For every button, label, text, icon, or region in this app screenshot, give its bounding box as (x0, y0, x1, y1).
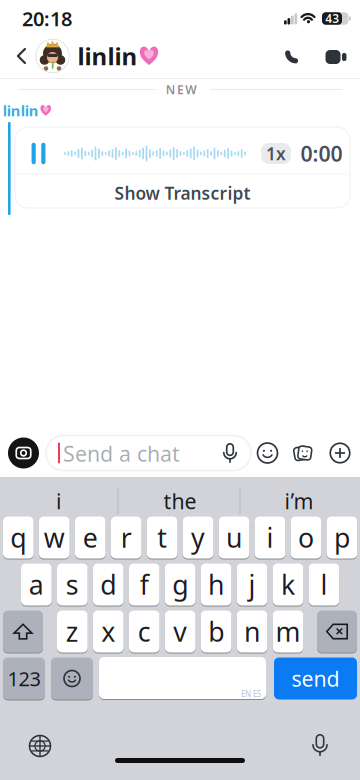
staticText: 20:18 (22, 5, 72, 32)
button[interactable]: k (273, 563, 303, 606)
button[interactable]: i’m (249, 486, 349, 516)
button[interactable]: Back (17, 48, 26, 64)
button[interactable]: m (273, 610, 303, 653)
staticText: f (140, 567, 149, 602)
button[interactable]: Stickers (293, 444, 313, 461)
staticText: y (191, 520, 205, 555)
button[interactable]: linlin (35, 39, 158, 73)
staticText: z (66, 614, 79, 649)
button[interactable]: the (130, 486, 230, 516)
staticText: c (138, 614, 151, 649)
button[interactable]: Shift (3, 610, 43, 653)
staticText: b (208, 614, 224, 649)
button[interactable]: Space (99, 657, 266, 700)
staticText: m (276, 614, 301, 649)
staticText: o (298, 520, 314, 555)
staticText: v (173, 614, 187, 649)
button[interactable]: c (129, 610, 160, 653)
button[interactable]: Dictation (312, 734, 328, 756)
button[interactable]: h (201, 563, 231, 606)
button[interactable]: i (9, 486, 109, 516)
staticText: 43 (325, 10, 339, 26)
staticText: p (334, 520, 350, 555)
staticText: h (208, 567, 224, 602)
staticText: i’m (284, 487, 313, 515)
staticText: g (172, 567, 188, 602)
button[interactable]: Send (274, 657, 357, 700)
button[interactable]: u (219, 516, 249, 559)
staticText: n (244, 614, 260, 649)
staticText: t (157, 520, 167, 555)
button[interactable]: b (201, 610, 231, 653)
button[interactable]: z (57, 610, 88, 653)
button[interactable]: t (147, 516, 177, 559)
button[interactable]: Pause (26, 139, 50, 167)
button[interactable]: w (39, 516, 70, 559)
button[interactable]: Call (284, 49, 300, 65)
button[interactable]: y (183, 516, 213, 559)
button[interactable]: i (255, 516, 285, 559)
staticText: a (29, 567, 44, 602)
button[interactable]: Playback speed (261, 143, 291, 164)
staticText: i (56, 487, 62, 515)
staticText: x (101, 614, 115, 649)
staticText: the (163, 487, 196, 515)
button[interactable]: x (93, 610, 124, 653)
button[interactable]: Switch keyboard (29, 735, 51, 757)
staticText: l (320, 567, 327, 602)
button[interactable]: g (165, 563, 195, 606)
button[interactable]: e (75, 516, 106, 559)
staticText: linlin (3, 101, 39, 120)
staticText: 123 (7, 665, 40, 692)
button[interactable]: q (3, 516, 34, 559)
button[interactable]: Delete (317, 610, 357, 653)
staticText: u (226, 520, 242, 555)
staticText: i (266, 520, 273, 555)
staticText: Show Transcript (114, 181, 250, 204)
staticText: r (121, 520, 132, 555)
button[interactable]: j (237, 563, 267, 606)
button[interactable]: p (327, 516, 357, 559)
button[interactable]: Numbers (3, 657, 45, 700)
button[interactable]: Emoji (257, 443, 277, 463)
button[interactable]: v (165, 610, 196, 653)
button[interactable]: Send a chat (63, 436, 183, 471)
button[interactable]: r (111, 516, 142, 559)
button[interactable]: Camera (8, 437, 39, 468)
button[interactable]: f (129, 563, 160, 606)
staticText: d (100, 567, 116, 602)
staticText: linlin (77, 40, 137, 72)
staticText: e (83, 520, 98, 555)
staticText: 0:00 (300, 139, 342, 168)
button[interactable]: a (21, 563, 52, 606)
staticText: Send a chat (63, 439, 180, 468)
staticText: s (66, 567, 79, 602)
button[interactable]: n (237, 610, 267, 653)
staticText: EN ES (241, 689, 261, 699)
staticText: 1x (266, 142, 286, 165)
staticText: send (291, 664, 339, 693)
button[interactable]: d (93, 563, 124, 606)
staticText: k (281, 567, 295, 602)
button[interactable]: l (309, 563, 339, 606)
button[interactable]: More (329, 442, 350, 463)
staticText: q (10, 520, 26, 555)
staticText: NEW (166, 81, 196, 97)
staticText: w (44, 520, 65, 555)
button[interactable]: Video Call (325, 50, 346, 64)
button[interactable]: o (291, 516, 321, 559)
button[interactable]: Voice note (222, 443, 237, 463)
staticText: j (249, 567, 256, 602)
button[interactable]: Show Transcript (16, 176, 349, 210)
button[interactable]: Emoji keyboard (51, 657, 93, 700)
button[interactable]: s (57, 563, 88, 606)
